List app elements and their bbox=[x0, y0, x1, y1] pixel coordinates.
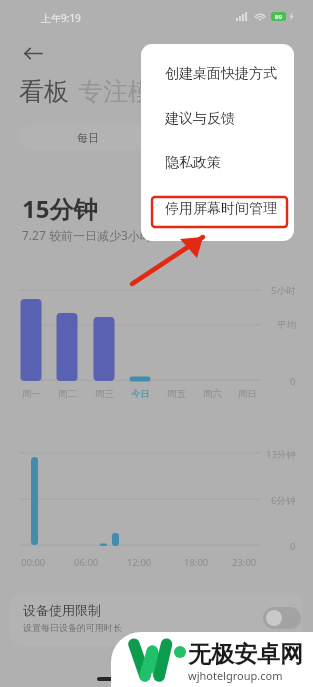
staticText: wjhotelgroup.com bbox=[188, 668, 283, 683]
staticText: 15分钟 bbox=[22, 192, 98, 225]
button[interactable]: 今日 bbox=[124, 387, 156, 401]
staticText: 设备使用限制 bbox=[23, 602, 101, 618]
staticText: 周三 bbox=[95, 388, 114, 400]
staticText: 停用屏幕时间管理 bbox=[165, 200, 277, 218]
button[interactable]: 周二 bbox=[51, 387, 83, 401]
staticText: 5小时 bbox=[271, 284, 296, 297]
button[interactable]: 看板 bbox=[19, 76, 69, 107]
button[interactable]: 设备使用限制 bbox=[10, 593, 303, 646]
staticText: 无极安卓网 bbox=[188, 640, 303, 669]
button[interactable]: Toggle device usage limit bbox=[263, 607, 301, 629]
staticText: 平均 bbox=[277, 319, 296, 331]
staticText: 看板 bbox=[19, 76, 69, 107]
button[interactable]: 创建桌面快捷方式 bbox=[141, 63, 294, 85]
staticText: 上午9:19 bbox=[41, 11, 81, 25]
staticText: 设置每日设备的可用时长 bbox=[23, 622, 122, 633]
staticText: 89 bbox=[275, 13, 282, 21]
staticText: 周一 bbox=[22, 388, 41, 400]
staticText: 专注模式 bbox=[78, 76, 178, 107]
button[interactable]: 建议与反馈 bbox=[141, 108, 294, 130]
staticText: 建议与反馈 bbox=[165, 110, 235, 128]
staticText: 12:00 bbox=[127, 556, 152, 569]
staticText: 每日 bbox=[77, 131, 99, 145]
staticText: 23:00 bbox=[232, 556, 257, 569]
button[interactable]: 周日 bbox=[231, 387, 263, 401]
staticText: 0 bbox=[290, 375, 296, 388]
staticText: 隐私政策 bbox=[165, 154, 221, 172]
staticText: 00:00 bbox=[21, 556, 46, 569]
button[interactable]: 周三 bbox=[88, 387, 120, 401]
staticText: 0 bbox=[290, 540, 296, 553]
staticText: 06:00 bbox=[74, 556, 99, 569]
button[interactable]: 隐私政策 bbox=[141, 152, 294, 174]
button[interactable]: 周一 bbox=[15, 387, 47, 401]
staticText: 18:00 bbox=[184, 556, 209, 569]
staticText: 创建桌面快捷方式 bbox=[165, 65, 277, 83]
staticText: 周日 bbox=[238, 388, 257, 400]
staticText: 周五 bbox=[167, 388, 186, 400]
button[interactable]: Back bbox=[14, 34, 52, 72]
button[interactable]: 停用屏幕时间管理 bbox=[141, 198, 294, 220]
button[interactable]: 周六 bbox=[196, 387, 228, 401]
button[interactable]: 周五 bbox=[160, 387, 192, 401]
staticText: 6分钟 bbox=[271, 494, 296, 507]
staticText: 13分钟 bbox=[266, 448, 296, 461]
staticText: 周二 bbox=[58, 388, 77, 400]
staticText: 今日 bbox=[131, 388, 150, 400]
staticText: 周六 bbox=[203, 388, 222, 400]
staticText: 7.27 较前一日减少3小时 bbox=[22, 227, 152, 243]
button[interactable]: 专注模式 bbox=[78, 76, 178, 107]
button[interactable]: 每日 bbox=[20, 125, 156, 150]
